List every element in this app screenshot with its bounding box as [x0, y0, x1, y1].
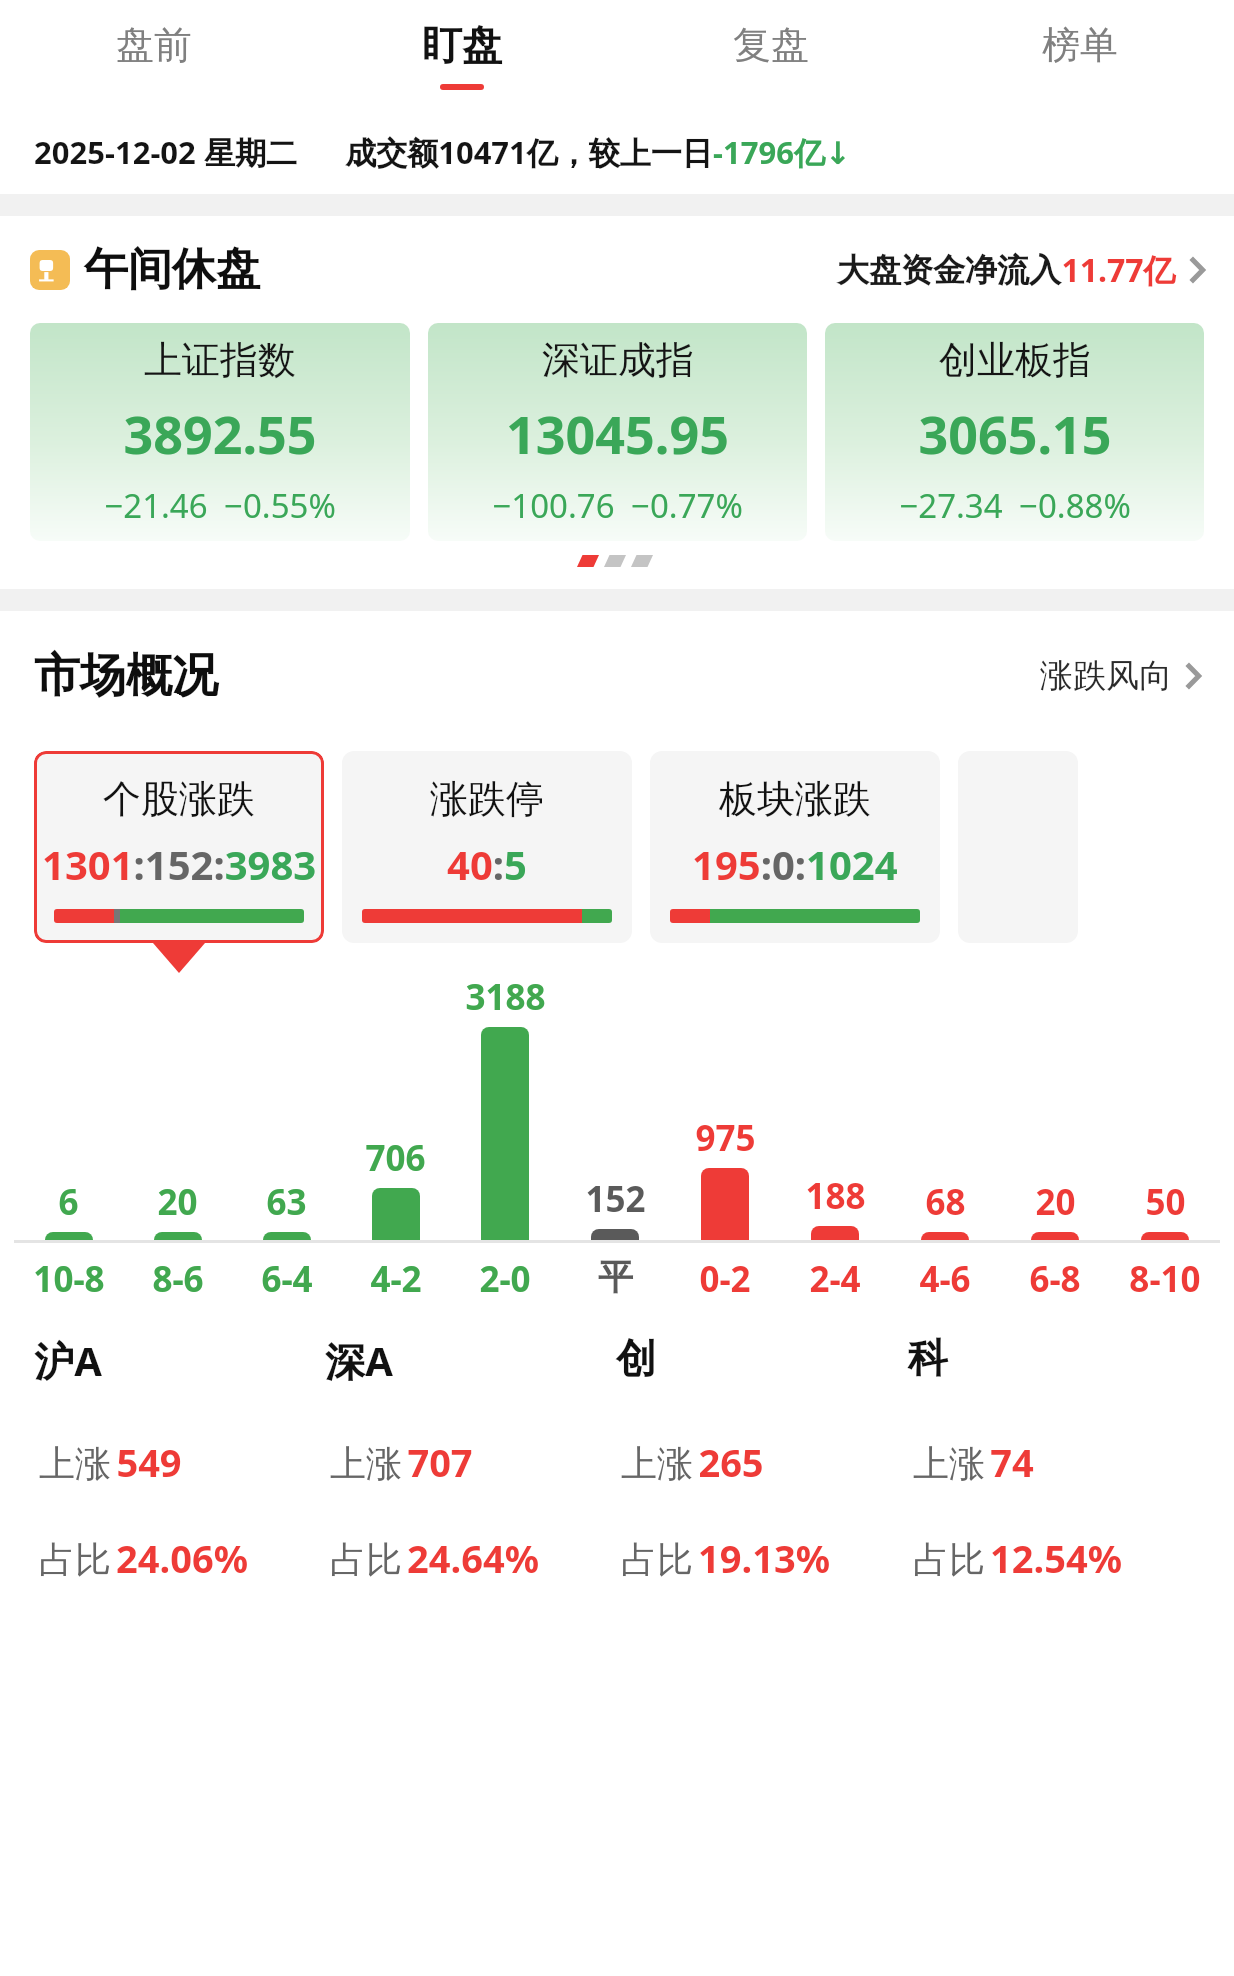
- staticText: 成交额10471亿，较上一日: [345, 131, 713, 173]
- button[interactable]: 涨跌风向: [1040, 655, 1200, 697]
- staticText: 24.64%: [407, 1532, 539, 1584]
- staticText: 11.77亿: [1061, 248, 1176, 292]
- staticText: 12.54%: [990, 1532, 1122, 1584]
- button[interactable]: 复盘: [616, 0, 925, 110]
- staticText: 24.06%: [116, 1532, 248, 1584]
- button[interactable]: 个股涨跌: [34, 751, 324, 943]
- staticText: 19.13%: [698, 1532, 830, 1584]
- staticText: 549: [116, 1436, 182, 1488]
- staticText: 4-2: [370, 1255, 422, 1303]
- staticText: −27.34: [899, 483, 1003, 528]
- button[interactable]: 榜单: [925, 0, 1234, 110]
- staticText: 占比: [908, 1534, 990, 1583]
- staticText: 40:5: [447, 837, 527, 891]
- staticText: 3065.15: [918, 398, 1112, 469]
- staticText: 0-2: [699, 1255, 751, 1303]
- staticText: 10-8: [33, 1255, 105, 1303]
- button[interactable]: 板块涨跌: [650, 751, 940, 943]
- staticText: 6-8: [1029, 1255, 1081, 1303]
- staticText: 188: [805, 1172, 866, 1220]
- staticText: 大盘资金净流入: [837, 250, 1061, 290]
- button[interactable]: 盯盘: [308, 0, 616, 110]
- staticText: -1796亿↓: [713, 131, 851, 173]
- staticText: 占比: [325, 1534, 407, 1583]
- staticText: 盯盘: [422, 20, 502, 70]
- staticText: 6: [58, 1178, 79, 1226]
- staticText: 板块涨跌: [719, 775, 871, 823]
- staticText: 上涨: [908, 1438, 990, 1487]
- staticText: 8-10: [1129, 1255, 1201, 1303]
- staticText: 深证成指: [542, 336, 694, 384]
- staticText: 975: [695, 1114, 756, 1162]
- staticText: 市场概况: [34, 647, 218, 705]
- staticText: 152: [585, 1175, 646, 1223]
- staticText: 上涨: [325, 1438, 407, 1487]
- staticText: 沪A: [34, 1333, 102, 1388]
- staticText: 3892.55: [123, 398, 317, 469]
- staticText: 创: [616, 1333, 656, 1383]
- staticText: 科: [908, 1333, 948, 1383]
- button[interactable]: 大盘资金净流入: [837, 248, 1204, 292]
- staticText: 20: [1035, 1178, 1076, 1226]
- staticText: 6-4: [261, 1255, 313, 1303]
- staticText: 3188: [465, 973, 546, 1021]
- staticText: 上涨: [616, 1438, 698, 1487]
- staticText: −0.88%: [1019, 483, 1131, 528]
- staticText: 午间休盘: [84, 242, 260, 297]
- staticText: 68: [925, 1178, 966, 1226]
- staticText: 个股涨跌: [103, 775, 255, 823]
- button[interactable]: 上证指数: [30, 323, 410, 541]
- staticText: −21.46: [104, 483, 208, 528]
- staticText: 盘前: [116, 21, 192, 69]
- staticText: 8-6: [152, 1255, 204, 1303]
- staticText: 74: [990, 1436, 1034, 1488]
- staticText: 榜单: [1042, 21, 1118, 69]
- staticText: 20: [157, 1178, 198, 1226]
- staticText: 2-0: [479, 1255, 531, 1303]
- staticText: 2-4: [809, 1255, 861, 1303]
- staticText: 平: [598, 1255, 633, 1299]
- staticText: −0.55%: [224, 483, 336, 528]
- staticText: 63: [266, 1178, 307, 1226]
- staticText: 占比: [616, 1534, 698, 1583]
- staticText: 4-6: [919, 1255, 971, 1303]
- staticText: −0.77%: [631, 483, 743, 528]
- staticText: 706: [365, 1134, 426, 1182]
- staticText: 上证指数: [144, 336, 296, 384]
- staticText: 涨跌风向: [1040, 655, 1172, 697]
- staticText: 13045.95: [506, 398, 729, 469]
- staticText: 涨跌停: [430, 775, 544, 823]
- button[interactable]: 涨跌停: [342, 751, 632, 943]
- staticText: −100.76: [492, 483, 615, 528]
- staticText: 创业板指: [939, 336, 1091, 384]
- staticText: 195:0:1024: [692, 837, 898, 891]
- staticText: 1301:152:3983: [42, 837, 317, 891]
- staticText: 265: [698, 1436, 764, 1488]
- staticText: 复盘: [733, 21, 809, 69]
- button[interactable]: 盘前: [0, 0, 308, 110]
- staticText: 深A: [325, 1333, 393, 1388]
- staticText: 上涨: [34, 1438, 116, 1487]
- staticText: 占比: [34, 1534, 116, 1583]
- button[interactable]: 深证成指: [428, 323, 807, 541]
- button[interactable]: 创业板指: [825, 323, 1204, 541]
- staticText: 707: [407, 1436, 473, 1488]
- staticText: 2025-12-02 星期二: [34, 131, 297, 173]
- staticText: 50: [1145, 1178, 1186, 1226]
